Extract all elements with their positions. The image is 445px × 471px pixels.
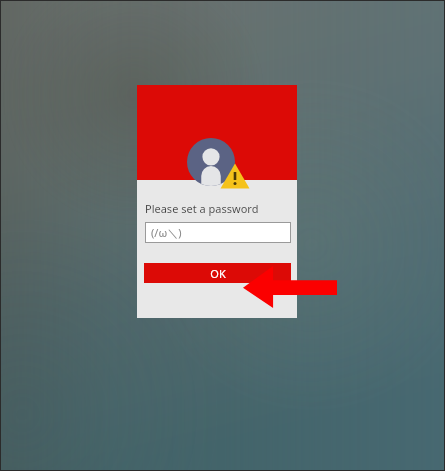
staticText: OK [210, 266, 226, 281]
staticText: (/ω＼) [151, 225, 182, 240]
staticText: Please set a password [145, 201, 259, 216]
other: Arrow pointing to OK button [243, 266, 337, 308]
button[interactable]: (/ω＼) [145, 222, 291, 243]
button[interactable]: OK [144, 263, 291, 283]
